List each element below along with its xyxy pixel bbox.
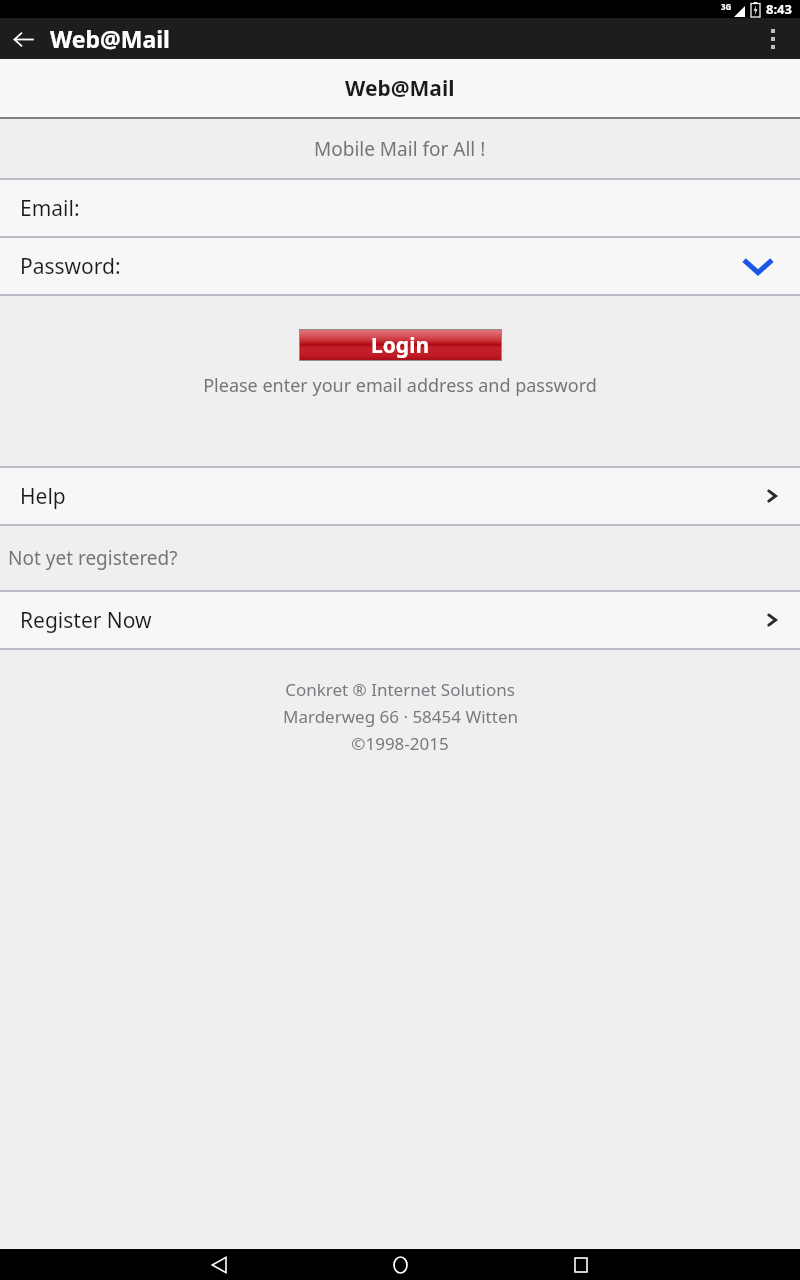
staticText: Web@Mail <box>50 23 756 54</box>
staticText: Please enter your email address and pass… <box>203 373 597 398</box>
staticText: Not yet registered? <box>8 545 178 571</box>
button[interactable]: Help <box>0 468 800 524</box>
button[interactable]: Back <box>200 1249 238 1280</box>
staticText: Marderweg 66 · 58454 Witten <box>283 705 518 728</box>
button[interactable]: Register Now <box>0 592 800 648</box>
staticText: 3G <box>721 1 732 12</box>
staticText: ©1998-2015 <box>351 732 449 755</box>
button[interactable]: Login <box>300 330 501 360</box>
staticText: Mobile Mail for All ! <box>314 136 486 162</box>
button[interactable]: Home <box>381 1249 419 1280</box>
staticText: Help <box>20 482 760 511</box>
staticText: Register Now <box>20 606 760 635</box>
staticText: Web@Mail <box>345 74 455 103</box>
staticText: 8:43 <box>766 0 792 18</box>
button[interactable]: Password: <box>0 238 800 294</box>
button[interactable]: Recent apps <box>562 1249 600 1280</box>
other: Show password options <box>742 250 774 282</box>
button[interactable]: Navigate up <box>8 24 38 54</box>
staticText: Login <box>371 331 430 360</box>
button[interactable]: Email: <box>0 180 800 236</box>
button[interactable]: More options <box>756 22 790 56</box>
staticText: Password: <box>20 252 742 281</box>
staticText: Email: <box>20 194 800 223</box>
staticText: Conkret ® Internet Solutions <box>285 678 515 701</box>
